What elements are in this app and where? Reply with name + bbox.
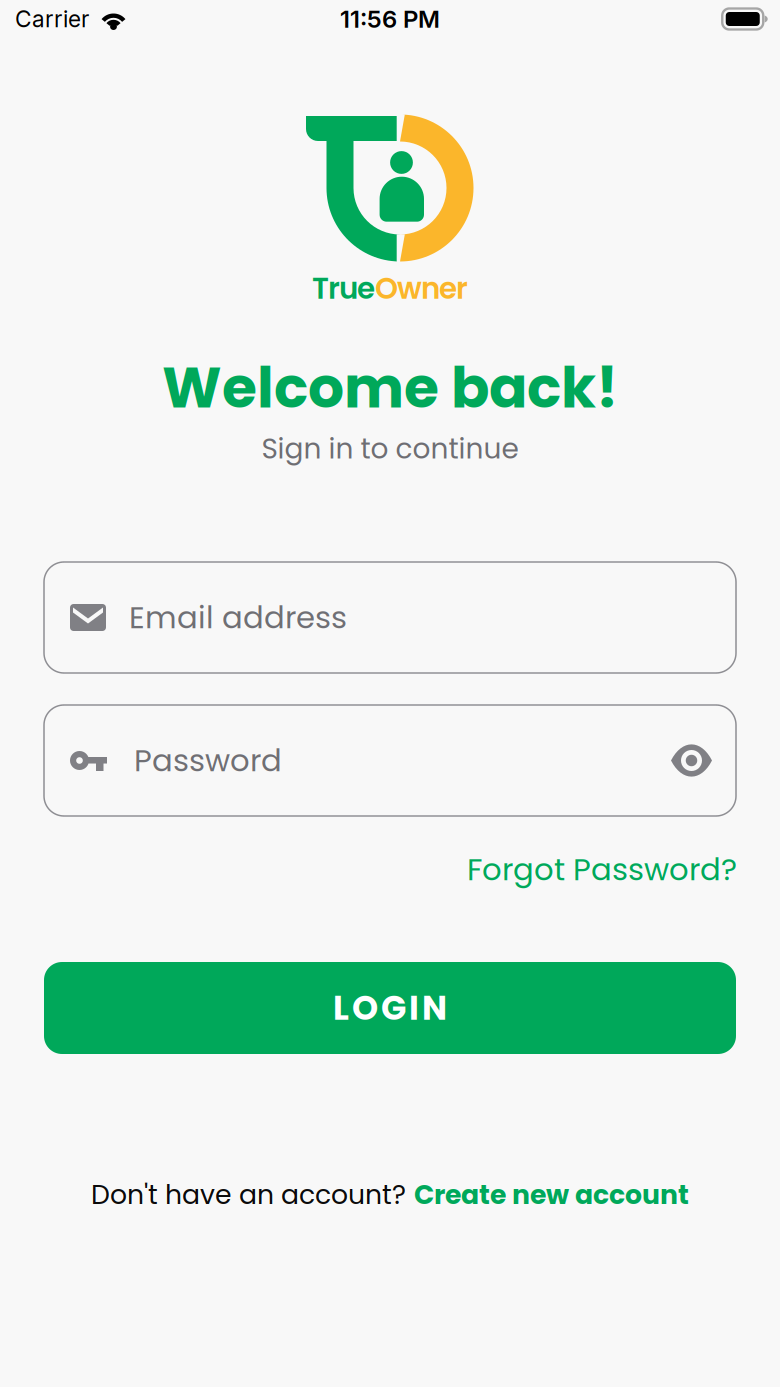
button[interactable]: Forgot Password? <box>467 848 737 891</box>
staticText: True <box>312 268 375 309</box>
staticText: LOGIN <box>333 985 447 1031</box>
staticText: Owner <box>375 268 468 309</box>
staticText: Email address <box>129 596 347 639</box>
button[interactable]: LOGIN <box>44 962 736 1054</box>
staticText: Password <box>134 739 282 782</box>
staticText: Carrier <box>15 5 89 33</box>
staticText: 11:56 PM <box>340 4 440 33</box>
button[interactable]: Create new account <box>406 1176 689 1213</box>
staticText: Create new account <box>414 1176 689 1213</box>
staticText: Forgot Password? <box>467 848 737 891</box>
staticText: Welcome back! <box>162 348 618 427</box>
staticText: Sign in to continue <box>261 429 518 468</box>
button[interactable]: Show password <box>671 746 736 775</box>
staticText: Don't have an account? <box>91 1176 406 1213</box>
